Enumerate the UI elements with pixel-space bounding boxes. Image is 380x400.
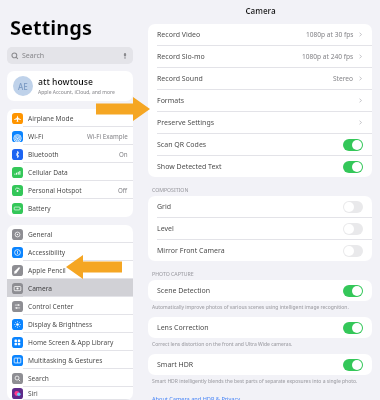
- staticText: 1080p at 240 fps: [302, 52, 354, 61]
- button[interactable]: Airplane Mode: [7, 109, 133, 127]
- staticText: att howtouse: [38, 76, 93, 88]
- button[interactable]: Level: [148, 218, 372, 239]
- staticText: Bluetooth: [28, 150, 59, 159]
- button[interactable]: About Camera and HDR & Privacy...: [152, 395, 245, 400]
- staticText: Search: [22, 51, 45, 61]
- button[interactable]: Search: [7, 47, 133, 64]
- button[interactable]: Toggle off: [343, 223, 363, 235]
- staticText: Accessibility: [28, 248, 66, 257]
- staticText: Record Sound: [157, 74, 203, 84]
- staticText: General: [28, 230, 53, 239]
- staticText: Record Video: [157, 30, 201, 40]
- staticText: Grid: [157, 202, 172, 212]
- staticText: Correct lens distortion on the front and…: [152, 341, 293, 348]
- staticText: Off: [118, 186, 128, 194]
- staticText: Wi-Fi Example: [87, 132, 128, 140]
- staticText: Siri: [28, 389, 38, 398]
- button[interactable]: Toggle on: [343, 285, 363, 297]
- button[interactable]: Preserve Settings: [148, 112, 372, 133]
- button[interactable]: Formats: [148, 90, 372, 111]
- button[interactable]: Search: [7, 369, 133, 387]
- button[interactable]: Toggle on: [343, 322, 363, 334]
- staticText: Stereo: [333, 74, 354, 83]
- staticText: AE: [18, 81, 28, 92]
- staticText: Home Screen & App Library: [28, 338, 114, 347]
- staticText: Apple Account, iCloud, and more: [38, 89, 115, 96]
- staticText: Mirror Front Camera: [157, 246, 225, 256]
- staticText: On: [119, 150, 128, 158]
- button[interactable]: Bluetooth: [7, 145, 133, 163]
- button[interactable]: Toggle off: [343, 201, 363, 213]
- button[interactable]: Toggle on: [343, 359, 363, 371]
- staticText: Battery: [28, 204, 51, 213]
- staticText: Preserve Settings: [157, 118, 215, 128]
- staticText: Automatically improve photos of various …: [152, 304, 349, 311]
- button[interactable]: General: [7, 225, 133, 243]
- button[interactable]: Record Slo-mo: [148, 46, 372, 67]
- staticText: Lens Correction: [157, 323, 209, 333]
- staticText: Display & Brightness: [28, 320, 93, 329]
- staticText: Settings: [10, 14, 92, 41]
- button[interactable]: Home Screen & App Library: [7, 333, 133, 351]
- staticText: Multitasking & Gestures: [28, 356, 103, 365]
- staticText: Wi-Fi: [28, 132, 44, 141]
- staticText: About Camera and HDR & Privacy...: [152, 395, 245, 400]
- staticText: Level: [157, 224, 174, 234]
- button[interactable]: Wi-Fi: [7, 127, 133, 145]
- staticText: Search: [28, 374, 49, 383]
- staticText: Control Center: [28, 302, 74, 311]
- staticText: 1080p at 30 fps: [306, 30, 354, 39]
- staticText: Camera: [28, 284, 53, 293]
- button[interactable]: AE: [7, 71, 133, 101]
- button[interactable]: Scene Detection: [148, 280, 372, 301]
- staticText: Airplane Mode: [28, 114, 74, 123]
- staticText: Show Detected Text: [157, 162, 222, 172]
- button[interactable]: Accessibility: [7, 243, 133, 261]
- staticText: Formats: [157, 96, 185, 106]
- staticText: Cellular Data: [28, 168, 68, 177]
- button[interactable]: Mirror Front Camera: [148, 240, 372, 261]
- button[interactable]: Control Center: [7, 297, 133, 315]
- staticText: Scan QR Codes: [157, 140, 207, 150]
- button[interactable]: Multitasking & Gestures: [7, 351, 133, 369]
- staticText: Personal Hotspot: [28, 186, 82, 195]
- button[interactable]: Battery: [7, 199, 133, 217]
- button[interactable]: Cellular Data: [7, 163, 133, 181]
- button[interactable]: Personal Hotspot: [7, 181, 133, 199]
- button[interactable]: Siri: [7, 387, 133, 400]
- button[interactable]: Toggle on: [343, 139, 363, 151]
- staticText: Scene Detection: [157, 286, 211, 296]
- button[interactable]: Toggle off: [343, 245, 363, 257]
- staticText: Apple Pencil: [28, 266, 66, 275]
- button[interactable]: Apple Pencil: [7, 261, 133, 279]
- button[interactable]: Show Detected Text: [148, 156, 372, 177]
- button[interactable]: Display & Brightness: [7, 315, 133, 333]
- staticText: PHOTO CAPTURE: [152, 270, 194, 277]
- staticText: Smart HDR intelligently blends the best …: [152, 378, 358, 385]
- button[interactable]: Record Video: [148, 24, 372, 45]
- button[interactable]: Camera: [7, 279, 133, 297]
- staticText: Smart HDR: [157, 360, 194, 370]
- staticText: COMPOSITION: [152, 186, 189, 193]
- staticText: Camera: [245, 5, 276, 16]
- button[interactable]: Lens Correction: [148, 317, 372, 338]
- button[interactable]: Scan QR Codes: [148, 134, 372, 155]
- button[interactable]: Grid: [148, 196, 372, 217]
- button[interactable]: Toggle on: [343, 161, 363, 173]
- staticText: Record Slo-mo: [157, 52, 205, 62]
- button[interactable]: Record Sound: [148, 68, 372, 89]
- button[interactable]: Smart HDR: [148, 354, 372, 375]
